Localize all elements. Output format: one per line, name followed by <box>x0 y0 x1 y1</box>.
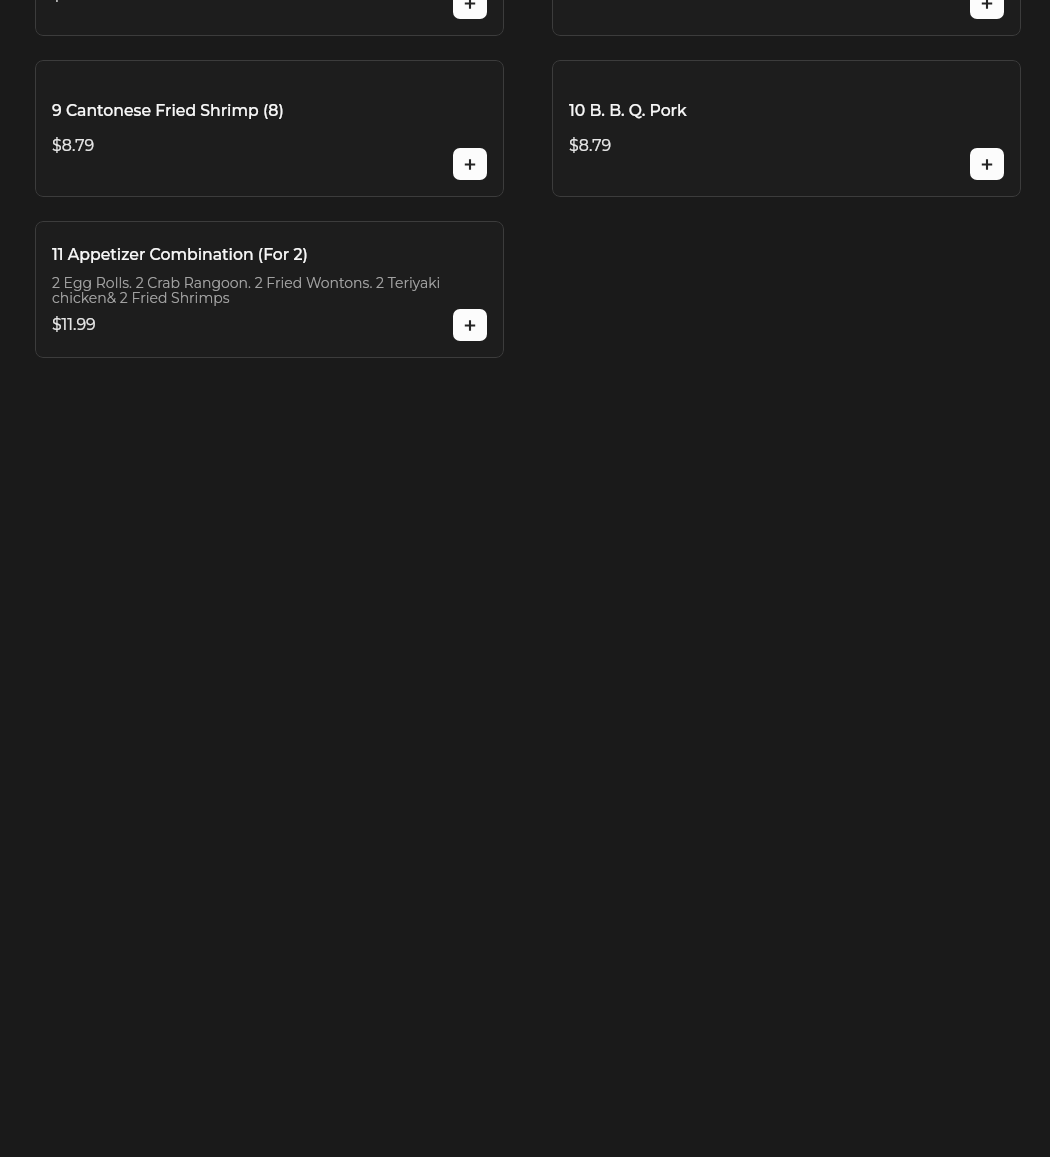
button[interactable]: 9 Cantonese Fried Shrimp (8) <box>35 60 504 197</box>
button[interactable]: 7 Fried Chicken Wings (8) <box>35 0 504 36</box>
staticText: $11.99 <box>52 315 504 334</box>
button[interactable]: 10 B. B. Q. Pork <box>552 60 1021 197</box>
staticText: $8.25 <box>52 0 504 4</box>
staticText: $8.79 <box>569 136 1021 155</box>
staticText: 11 Appetizer Combination (For 2) <box>52 245 504 264</box>
staticText: 10 B. B. Q. Pork <box>569 101 1021 120</box>
staticText: 2 Egg Rolls. 2 Crab Rangoon. 2 Fried Won… <box>52 274 486 307</box>
button[interactable]: Add to order <box>453 148 487 180</box>
button[interactable]: Add to order <box>453 309 487 341</box>
button[interactable]: 11 Appetizer Combination (For 2) <box>35 221 504 358</box>
button[interactable]: 8 Crab Rangoon (8) <box>552 0 1021 36</box>
button[interactable]: Add to order <box>970 148 1004 180</box>
staticText: $8.79 <box>52 136 504 155</box>
staticText: 9 Cantonese Fried Shrimp (8) <box>52 101 504 120</box>
button[interactable]: Add to order <box>453 0 487 19</box>
button[interactable]: Add to order <box>970 0 1004 19</box>
